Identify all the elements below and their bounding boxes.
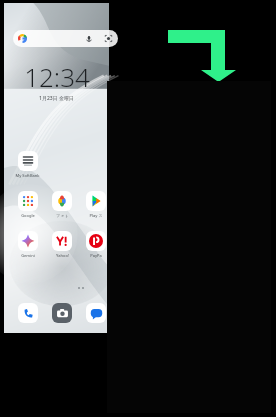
staticText: Play ス — [89, 213, 103, 218]
staticText: Google — [21, 213, 35, 218]
other: Voice search — [85, 35, 93, 43]
staticText: Yahoo! — [56, 253, 69, 258]
button[interactable]: Voice search — [13, 30, 118, 47]
staticText: 1月23日 金曜日 — [39, 95, 74, 102]
button[interactable]: Phone — [11, 303, 45, 323]
button[interactable]: My SoftBank — [15, 151, 40, 178]
button[interactable]: Google — [11, 191, 45, 218]
button[interactable]: Gemini — [11, 231, 45, 258]
staticText: My SoftBank — [15, 173, 40, 178]
other: Google Lens — [104, 34, 113, 43]
button[interactable]: フォト — [45, 191, 79, 218]
staticText: 12:34 — [24, 59, 90, 94]
other: Arrow pointing down — [168, 28, 238, 84]
staticText: Gemini — [21, 253, 35, 258]
staticText: PayPa — [90, 253, 102, 258]
staticText: フォト — [56, 213, 69, 218]
button[interactable]: Camera — [45, 303, 79, 323]
button[interactable]: Yahoo! — [45, 231, 79, 258]
button[interactable]: Play ス — [79, 191, 113, 218]
button[interactable]: Messages — [79, 303, 113, 323]
button[interactable]: PayPa — [79, 231, 113, 258]
